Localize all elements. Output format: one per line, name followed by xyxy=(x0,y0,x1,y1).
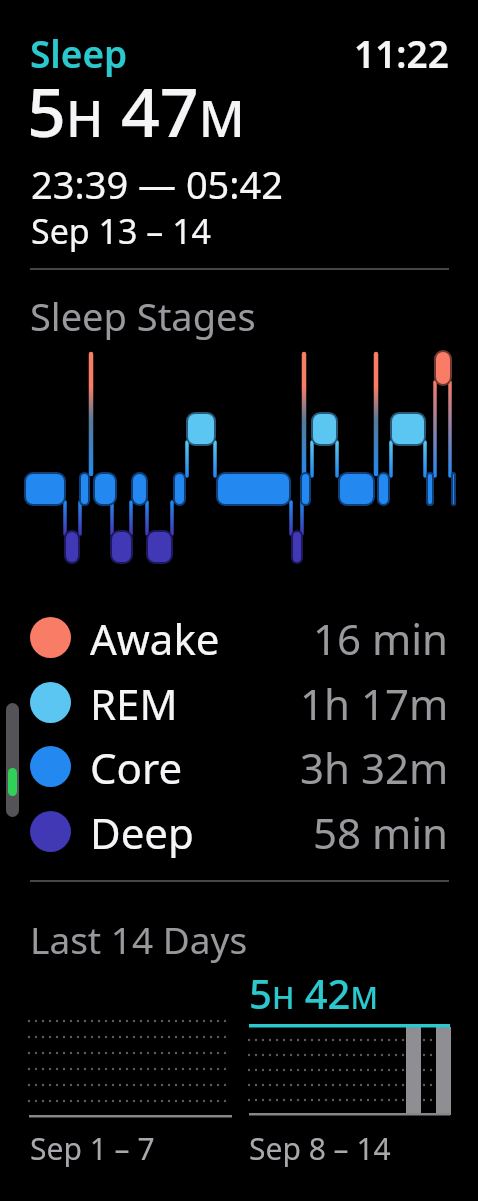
staticText: 16 min xyxy=(313,610,449,664)
button[interactable]: Core xyxy=(30,739,449,793)
staticText: 5H 47M xyxy=(27,64,245,157)
staticText: Awake xyxy=(90,610,220,664)
staticText: REM xyxy=(90,675,178,729)
staticText: Last 14 Days xyxy=(30,914,248,964)
staticText: Sleep xyxy=(30,28,128,78)
staticText: Deep xyxy=(90,804,194,858)
button[interactable]: REM xyxy=(30,675,449,729)
button[interactable] xyxy=(29,1015,232,1120)
staticText: 11:22 xyxy=(354,28,449,78)
staticText: 58 min xyxy=(313,804,449,858)
button[interactable] xyxy=(249,1015,450,1120)
staticText: Core xyxy=(90,739,183,793)
staticText: 1h 17m xyxy=(300,675,449,729)
staticText: Sep 8 – 14 xyxy=(249,1128,391,1169)
button[interactable]: Awake xyxy=(30,610,449,664)
staticText: 3h 32m xyxy=(300,739,449,793)
staticText: Sep 1 – 7 xyxy=(30,1128,155,1169)
staticText: Sep 13 – 14 xyxy=(31,208,212,254)
staticText: Sleep Stages xyxy=(30,290,256,342)
button[interactable]: Deep xyxy=(30,804,449,858)
staticText: 23:39 — 05:42 xyxy=(31,158,284,210)
staticText: 5H 42M xyxy=(249,966,379,1020)
